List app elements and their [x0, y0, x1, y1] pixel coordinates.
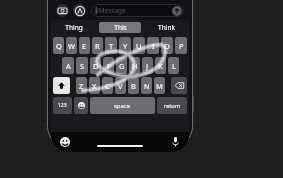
button[interactable]: Z	[76, 77, 87, 94]
button[interactable]: Shift	[53, 77, 70, 94]
button[interactable]: space	[90, 97, 155, 114]
button[interactable]: This	[99, 22, 141, 33]
button[interactable]: V	[115, 77, 126, 94]
staticText: W	[68, 41, 75, 51]
button[interactable]: A	[62, 57, 74, 74]
button[interactable]: return	[157, 97, 187, 114]
staticText: Think	[158, 23, 175, 32]
button[interactable]: Q	[53, 37, 64, 54]
button[interactable]: Camera	[56, 4, 69, 17]
button[interactable]: J	[142, 57, 153, 74]
staticText: Thing	[65, 23, 83, 32]
staticText: C	[105, 81, 110, 91]
staticText: iMessage	[97, 6, 126, 15]
button[interactable]: C	[102, 77, 113, 94]
staticText: E	[82, 41, 87, 51]
button[interactable]: M	[154, 77, 165, 94]
button[interactable]: D	[90, 57, 101, 74]
button[interactable]: Emoji keyboard	[59, 136, 71, 148]
button[interactable]: iMessage	[91, 4, 184, 17]
button[interactable]: Backspace	[171, 77, 187, 94]
button[interactable]: L	[168, 57, 179, 74]
staticText: P	[179, 41, 184, 51]
button[interactable]: Thing	[53, 22, 95, 33]
button[interactable]: T	[105, 37, 117, 54]
button[interactable]: G	[116, 57, 127, 74]
button[interactable]: X	[89, 77, 100, 94]
staticText: 123	[58, 102, 67, 109]
button[interactable]: N	[141, 77, 152, 94]
button[interactable]: Send	[172, 6, 182, 16]
button[interactable]: Y	[119, 37, 131, 54]
button[interactable]: Emoji	[74, 97, 88, 114]
staticText: space	[114, 102, 131, 110]
button[interactable]: 123	[53, 97, 72, 114]
button[interactable]: Dictation	[169, 136, 181, 148]
staticText: D	[93, 61, 99, 71]
button[interactable]: K	[155, 57, 166, 74]
button[interactable]: O	[161, 37, 173, 54]
button[interactable]: S	[76, 57, 88, 74]
button[interactable]: I	[147, 37, 159, 54]
staticText: F	[107, 61, 111, 71]
button[interactable]: E	[79, 37, 90, 54]
staticText: T	[109, 41, 114, 51]
staticText: V	[118, 81, 123, 91]
button[interactable]: Apps	[73, 4, 86, 17]
staticText: N	[144, 81, 150, 91]
staticText: This	[114, 23, 127, 32]
staticText: Y	[123, 41, 128, 51]
staticText: B	[131, 81, 136, 91]
button[interactable]: R	[92, 37, 103, 54]
button[interactable]: F	[103, 57, 114, 74]
button[interactable]: W	[66, 37, 77, 54]
staticText: G	[119, 61, 125, 71]
staticText: Z	[79, 81, 84, 91]
staticText: S	[80, 61, 85, 71]
button[interactable]: U	[133, 37, 145, 54]
button[interactable]: Think	[145, 22, 187, 33]
staticText: L	[172, 61, 176, 71]
staticText: return	[164, 102, 181, 109]
staticText: M	[156, 81, 163, 91]
staticText: X	[92, 81, 97, 91]
staticText: R	[95, 41, 100, 51]
staticText: J	[146, 61, 149, 71]
staticText: K	[158, 61, 163, 71]
button[interactable]: B	[128, 77, 139, 94]
staticText: O	[164, 41, 170, 51]
staticText: I	[152, 41, 155, 51]
button[interactable]: H	[129, 57, 140, 74]
staticText: U	[136, 41, 142, 51]
staticText: A	[66, 61, 71, 71]
button[interactable]: P	[175, 37, 187, 54]
staticText: H	[132, 61, 138, 71]
staticText: Q	[56, 41, 62, 51]
